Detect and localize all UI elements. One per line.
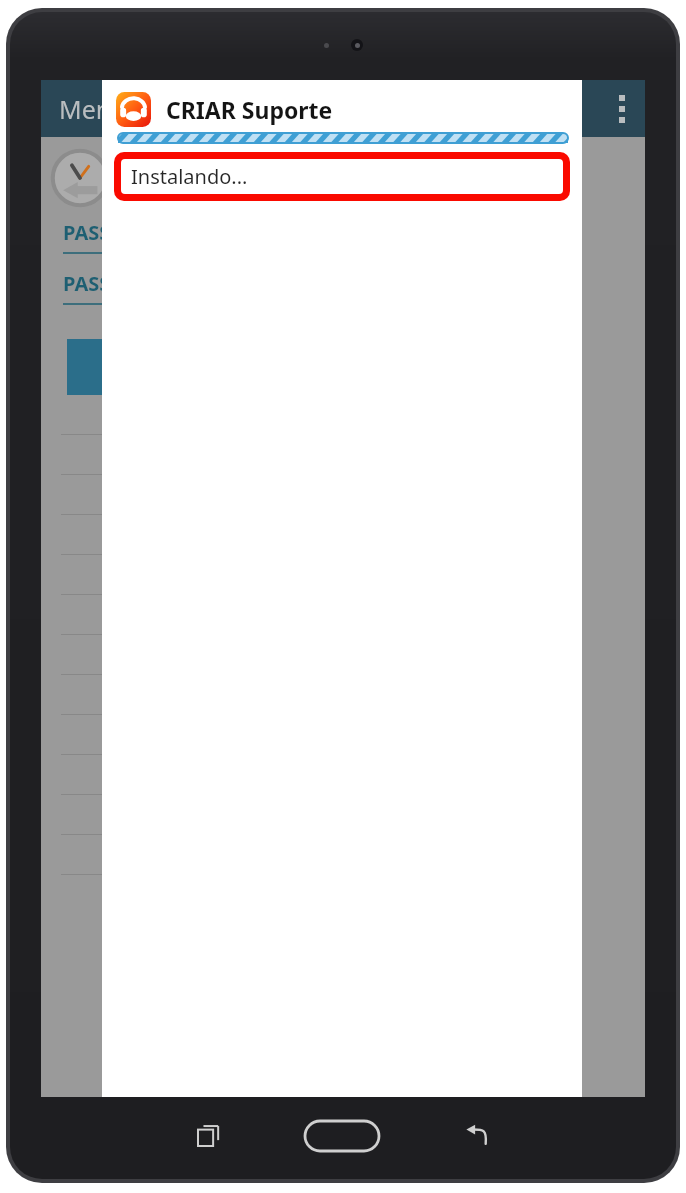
staticText: PASSO 2 [63,270,143,297]
staticText: Menu [59,92,127,126]
button[interactable] [67,339,344,395]
button[interactable]: Recents [180,1107,237,1164]
button[interactable]: More options [599,82,645,136]
button[interactable]: Back [447,1106,506,1165]
button[interactable]: Home [293,1109,391,1163]
staticText: Instalando... [131,163,248,190]
button[interactable]: PASSO 1 [63,219,352,254]
button[interactable]: PASSO 2 [63,270,352,305]
staticText: PASSO 1 [63,219,143,246]
staticText: CRIAR Suporte [166,94,333,125]
